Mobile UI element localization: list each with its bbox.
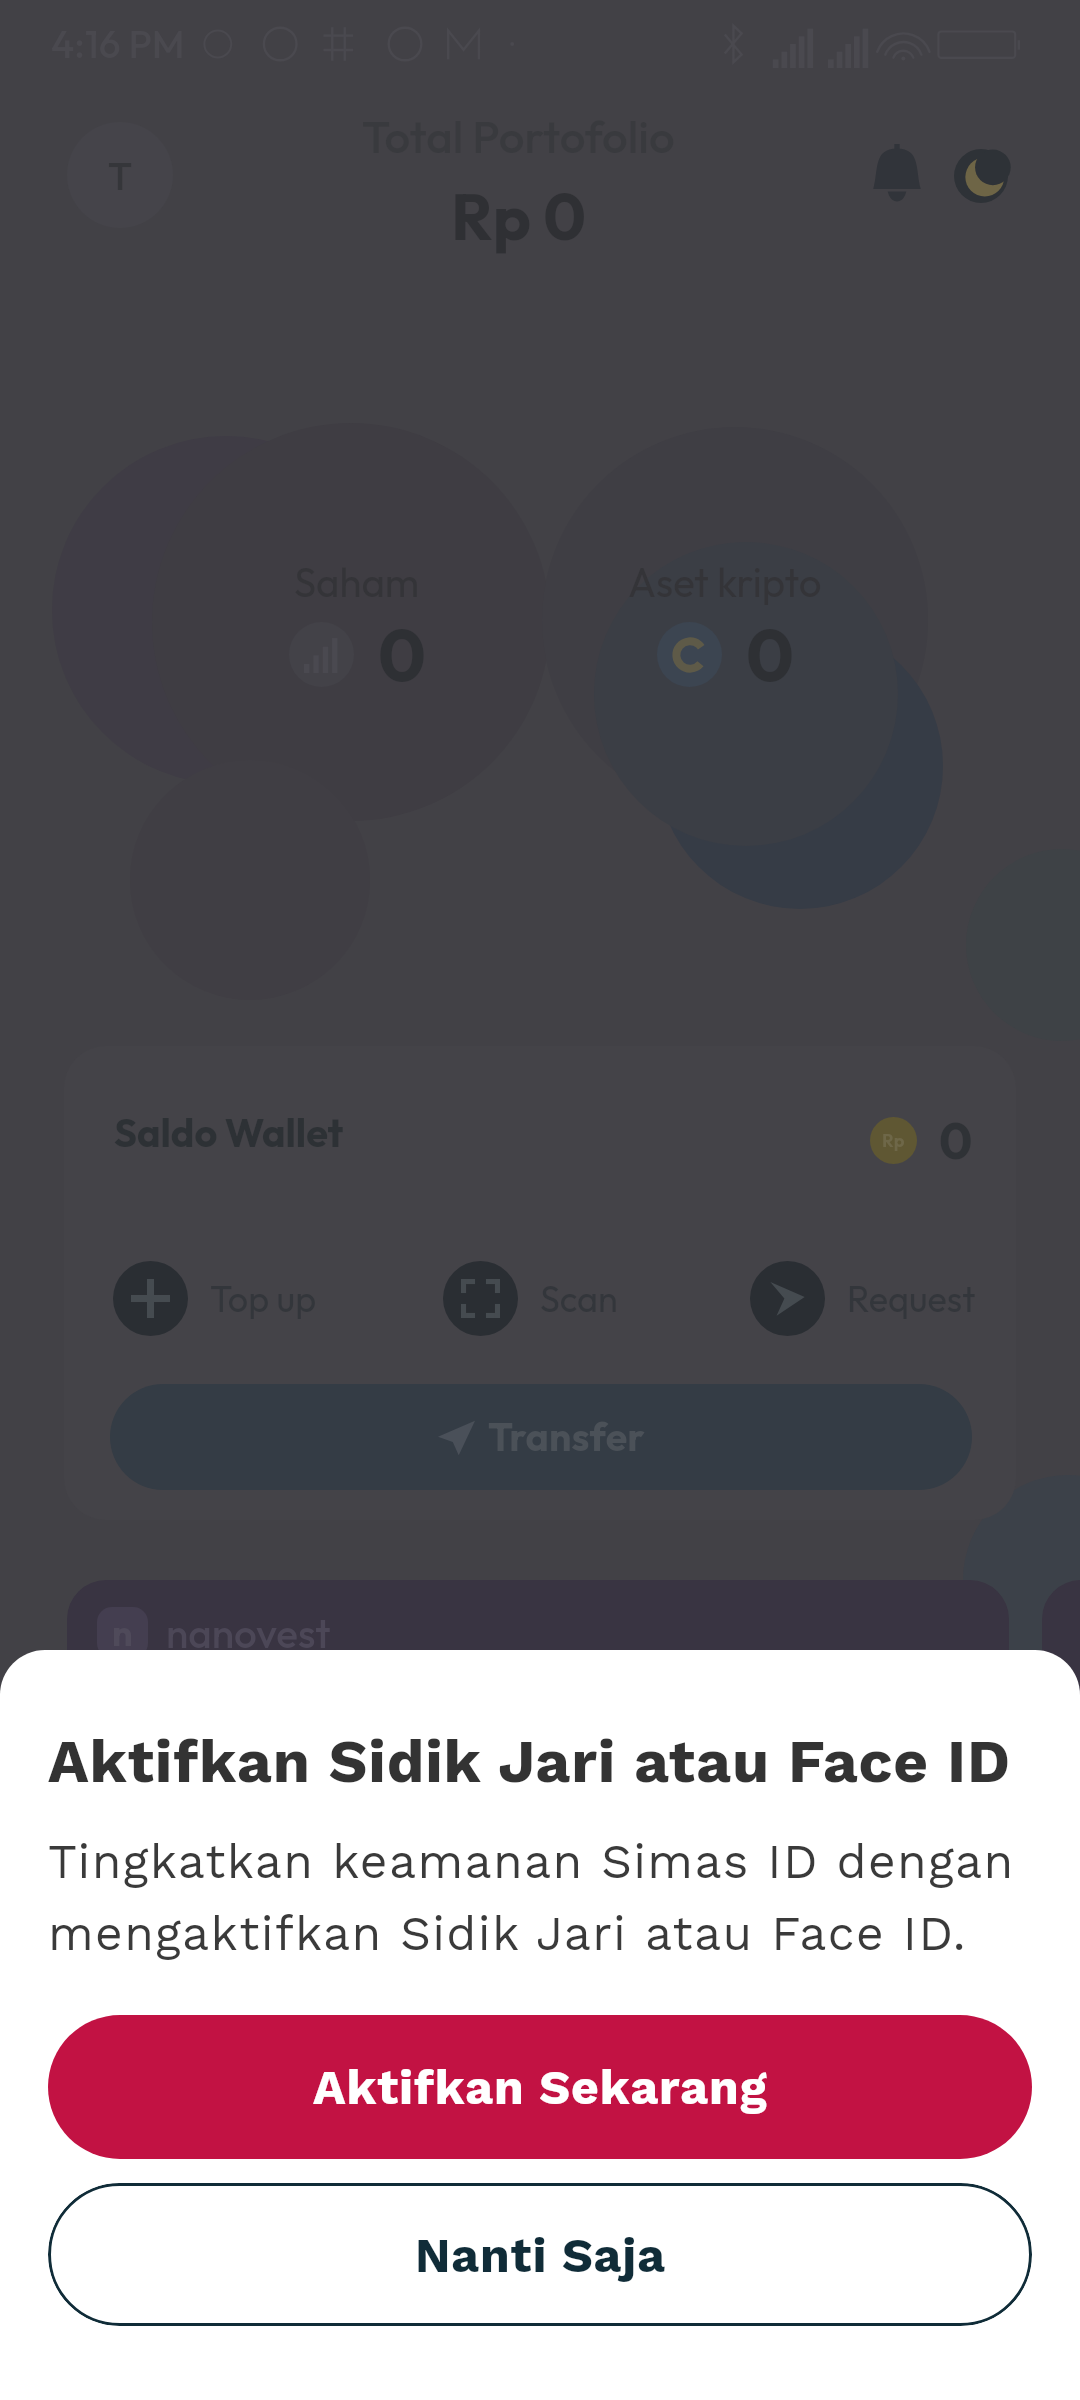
button[interactable]: Aset kripto [545,557,905,700]
staticText: n [112,1610,133,1655]
staticText: 0 [939,1109,973,1172]
staticText: 0 [378,609,426,700]
button[interactable] [1042,1580,1080,1760]
staticText: Saham [294,557,420,608]
button[interactable]: Nanti Saja [48,2183,1032,2326]
staticText: Rp [882,1129,905,1152]
button[interactable]: Request [750,1261,976,1336]
staticText: Scan [540,1276,618,1321]
button[interactable]: Transfer [110,1384,972,1490]
staticText: Nanti Saja [415,2227,666,2283]
button[interactable]: Top up [113,1261,317,1336]
button[interactable]: Saham [177,557,537,700]
staticText: Rp 0 [451,176,586,257]
staticText: 4:16 PM [51,19,185,68]
staticText: T [108,151,133,200]
staticText: Aktifkan Sidik Jari atau Face ID [48,1726,1011,1796]
staticText: Aktifkan Sekarang [313,2059,768,2115]
staticText: nanovest [166,1607,331,1658]
button[interactable]: Close [0,0,1080,2400]
button[interactable]: Notifications [864,144,930,210]
button[interactable]: n [67,1580,1009,1760]
staticText: Top up [210,1276,317,1321]
staticText: Transfer [488,1412,645,1462]
button[interactable]: Dark mode [954,149,1008,203]
staticText: Saldo Wallet [114,1107,344,1157]
staticText: Tingkatkan keamanan Simas ID dengan meng… [48,1833,1032,1962]
button[interactable]: Scan [443,1261,618,1336]
staticText: Request [847,1276,976,1321]
button[interactable]: Aktifkan Sekarang [48,2015,1032,2159]
staticText: Aset kripto [628,557,822,608]
staticText: 0 [746,609,794,700]
staticText: Total Portofolio [362,107,675,164]
